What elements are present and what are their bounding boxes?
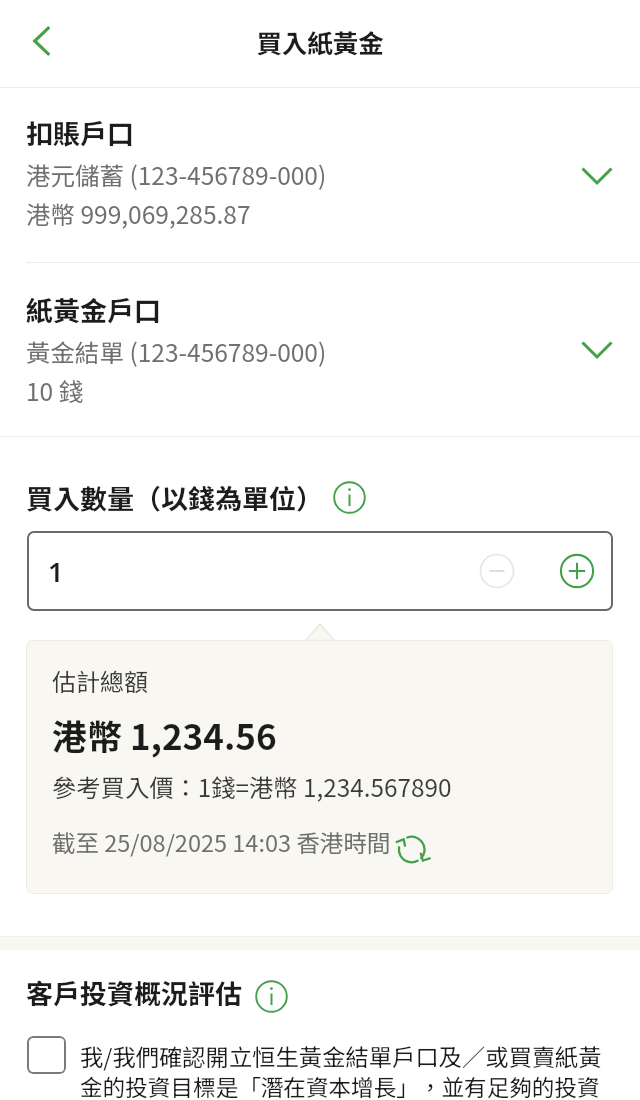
staticText: 扣賬戶口 bbox=[26, 113, 134, 152]
button[interactable]: 扣賬戶口 bbox=[0, 88, 640, 262]
button[interactable]: Back bbox=[20, 13, 64, 69]
button[interactable]: Confirm investment objective bbox=[27, 1036, 66, 1074]
staticText: 港幣 999,069,285.87 bbox=[26, 196, 251, 231]
button[interactable]: 紙黃金戶口 bbox=[0, 263, 640, 436]
staticText: 1 bbox=[48, 553, 64, 590]
button[interactable]: Refresh rate bbox=[393, 829, 433, 869]
staticText: 買入紙黃金 bbox=[0, 23, 640, 60]
staticText: 客戶投資概況評估 bbox=[26, 973, 242, 1012]
staticText: 港元儲蓄 (123-456789-000) bbox=[26, 157, 327, 192]
staticText: 估計總額 bbox=[52, 663, 148, 698]
staticText: 紙黃金戶口 bbox=[26, 290, 161, 329]
staticText: 買入數量（以錢為單位） bbox=[26, 478, 323, 517]
staticText: 金的投資目標是「潛在資本增長」，並有足夠的投資 bbox=[80, 1070, 600, 1100]
button[interactable]: Decrease quantity bbox=[473, 547, 520, 594]
button[interactable]: Expand account bbox=[575, 339, 619, 369]
staticText: 參考買入價：1錢=港幣 1,234.567890 bbox=[52, 769, 452, 804]
staticText: 10 錢 bbox=[26, 373, 84, 408]
button[interactable]: About buy quantity bbox=[333, 481, 366, 514]
staticText: 截至 25/08/2025 14:03 香港時間 bbox=[52, 825, 391, 859]
button[interactable]: Increase quantity bbox=[553, 547, 600, 594]
staticText: 我/我們確認開立恒生黃金結單戶口及／或買賣紙黃 bbox=[80, 1039, 602, 1073]
button[interactable]: Expand account bbox=[575, 165, 619, 195]
staticText: 港幣 1,234.56 bbox=[52, 709, 277, 760]
staticText: 黃金結單 (123-456789-000) bbox=[26, 334, 327, 369]
button[interactable]: About investment profile bbox=[255, 980, 288, 1013]
